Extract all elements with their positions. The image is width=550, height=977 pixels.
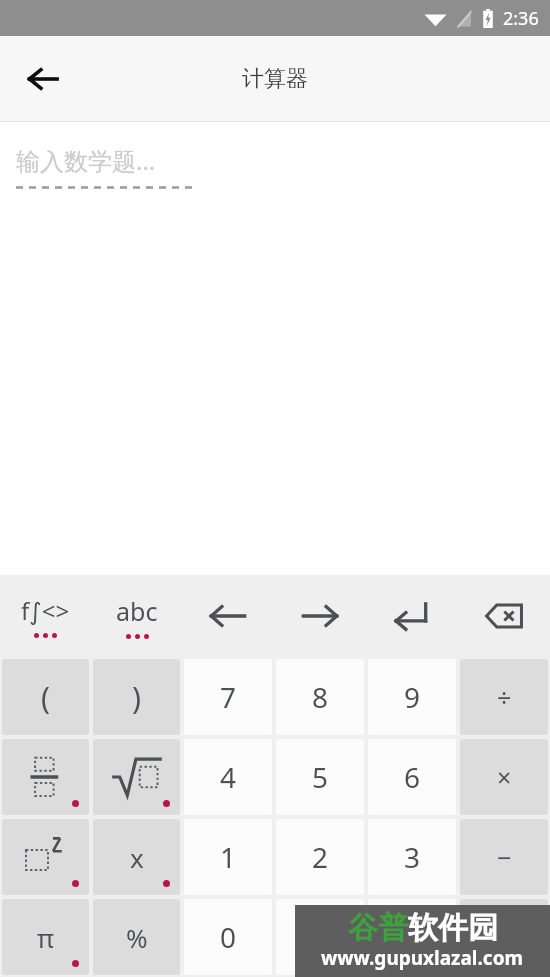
button[interactable]: Backspace bbox=[458, 575, 550, 657]
staticText: abc bbox=[116, 594, 158, 628]
staticText: ( bbox=[41, 677, 50, 718]
staticText: x bbox=[130, 840, 144, 875]
button[interactable]: Fraction bbox=[2, 739, 89, 815]
button[interactable]: ) bbox=[93, 659, 180, 735]
button[interactable]: 8 bbox=[276, 659, 364, 735]
button[interactable]: 2 bbox=[276, 819, 364, 895]
button[interactable]: Move right bbox=[274, 575, 366, 657]
button[interactable]: Square root bbox=[93, 739, 180, 815]
staticText: 7 bbox=[220, 678, 237, 716]
button[interactable] bbox=[368, 899, 456, 975]
button[interactable] bbox=[276, 899, 364, 975]
button[interactable]: f∫<> bbox=[0, 575, 91, 657]
staticText: 9 bbox=[404, 678, 421, 716]
button[interactable]: − bbox=[460, 819, 548, 895]
staticText: 计算器 bbox=[242, 65, 308, 93]
staticText: 软件园 bbox=[408, 909, 498, 947]
staticText: 输入数学题... bbox=[16, 144, 156, 177]
button[interactable]: 6 bbox=[368, 739, 456, 815]
staticText: 4 bbox=[220, 758, 237, 796]
staticText: 5 bbox=[312, 758, 329, 796]
button[interactable]: 5 bbox=[276, 739, 364, 815]
staticText: × bbox=[497, 760, 512, 794]
button[interactable]: π bbox=[2, 899, 89, 975]
button[interactable]: 3 bbox=[368, 819, 456, 895]
button[interactable]: 0 bbox=[184, 899, 272, 975]
staticText: 2:36 bbox=[503, 6, 539, 31]
staticText: 谷普 bbox=[348, 909, 408, 947]
staticText: − bbox=[497, 840, 512, 874]
staticText: ) bbox=[132, 677, 141, 718]
staticText: www.gupuxlazal.com bbox=[321, 945, 524, 971]
staticText: 8 bbox=[312, 678, 329, 716]
staticText: % bbox=[126, 920, 148, 955]
staticText: 2 bbox=[312, 838, 329, 876]
button[interactable]: abc bbox=[91, 575, 182, 657]
button[interactable]: Power bbox=[2, 819, 89, 895]
staticText: 1 bbox=[220, 838, 237, 876]
button[interactable]: Enter bbox=[366, 575, 458, 657]
button[interactable]: × bbox=[460, 739, 548, 815]
button[interactable] bbox=[460, 899, 548, 975]
staticText: 0 bbox=[220, 918, 237, 956]
button[interactable]: ÷ bbox=[460, 659, 548, 735]
button[interactable]: 9 bbox=[368, 659, 456, 735]
staticText: f∫<> bbox=[21, 594, 70, 627]
staticText: 6 bbox=[404, 758, 421, 796]
button[interactable]: 1 bbox=[184, 819, 272, 895]
staticText: π bbox=[37, 920, 54, 955]
button[interactable]: ( bbox=[2, 659, 89, 735]
button[interactable]: x bbox=[93, 819, 180, 895]
button[interactable]: Back bbox=[16, 52, 70, 106]
staticText: ÷ bbox=[497, 680, 512, 714]
button[interactable]: 7 bbox=[184, 659, 272, 735]
button[interactable]: % bbox=[93, 899, 180, 975]
button[interactable]: Move left bbox=[182, 575, 274, 657]
staticText: 3 bbox=[404, 838, 421, 876]
button[interactable]: 4 bbox=[184, 739, 272, 815]
